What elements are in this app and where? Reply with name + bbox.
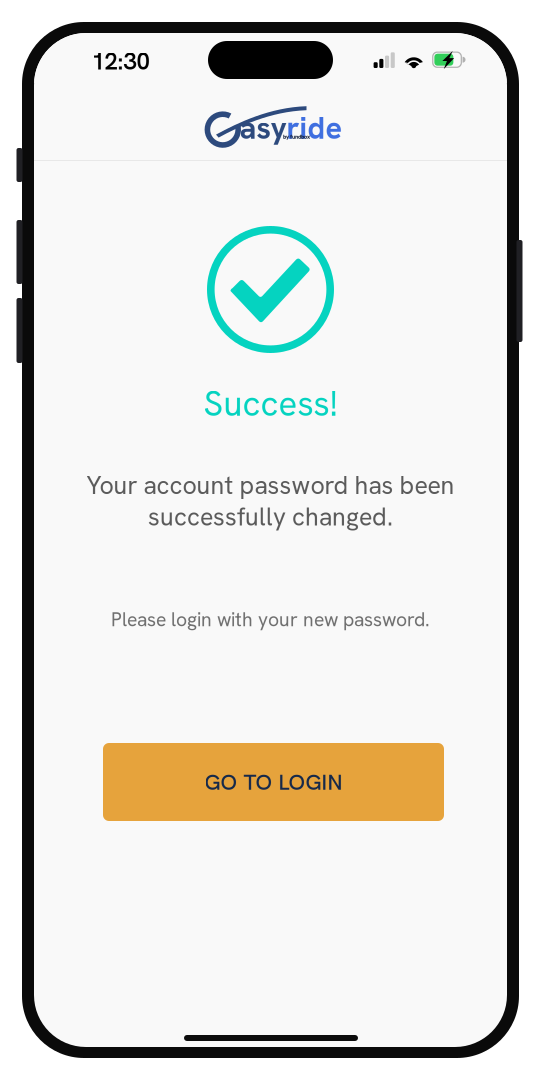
staticText: by fundbox [283, 133, 310, 140]
button[interactable]: GO TO LOGIN [103, 743, 444, 821]
staticText: Success! [203, 381, 337, 426]
staticText: ride [286, 108, 342, 148]
staticText: Your account password has been [86, 469, 454, 501]
staticText: successfully changed. [148, 500, 393, 533]
staticText: Please login with your new password. [111, 607, 430, 632]
staticText: 12:30 [91, 45, 149, 77]
staticText: GO TO LOGIN [204, 768, 342, 796]
staticText: asy [239, 108, 286, 148]
